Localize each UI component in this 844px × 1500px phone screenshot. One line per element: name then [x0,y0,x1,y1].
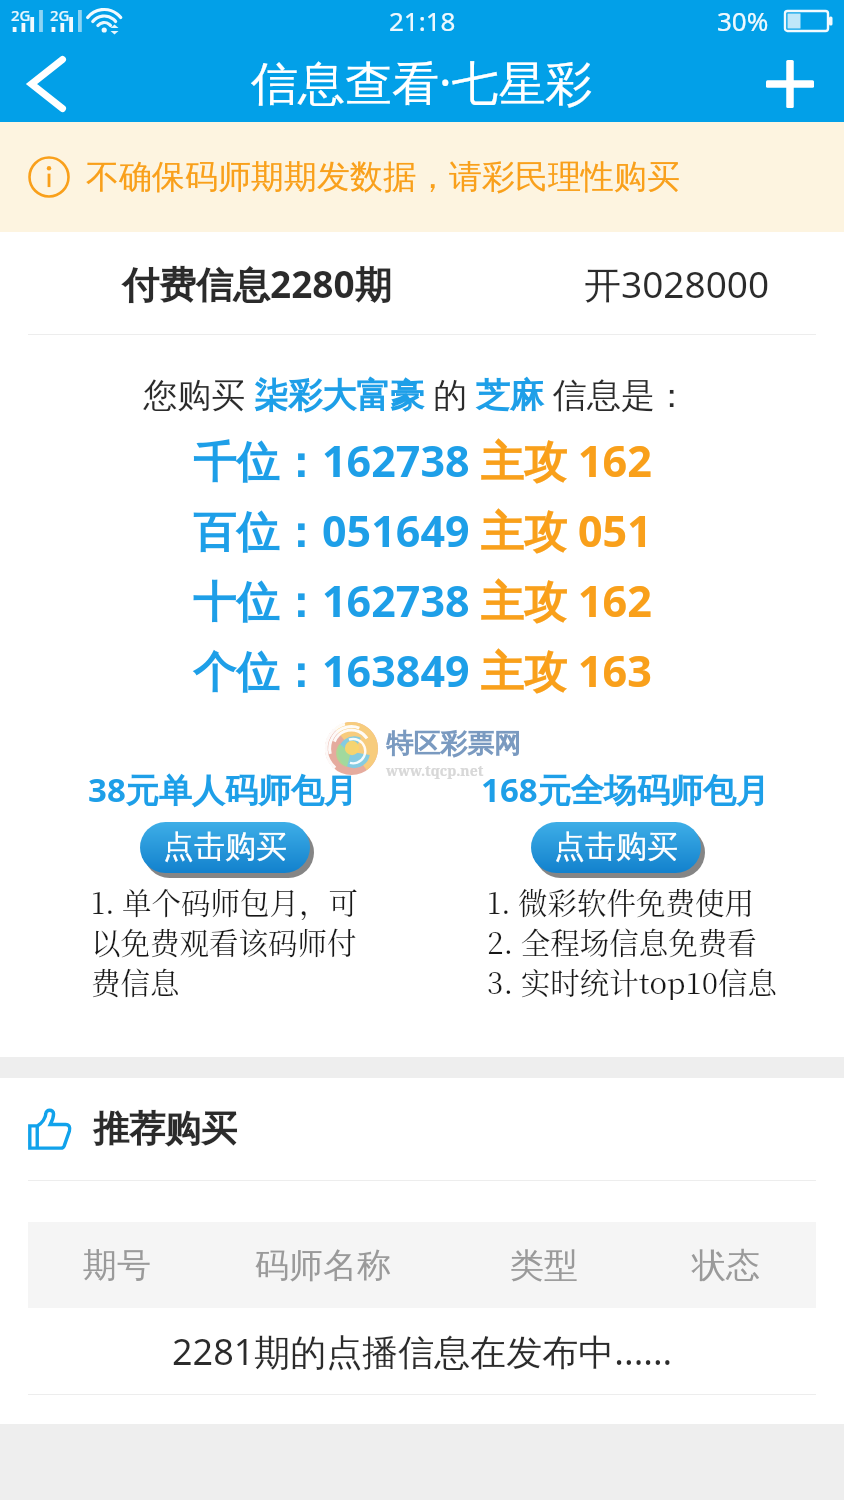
staticText: 点击购买 [554,827,678,866]
staticText: 30% [717,3,769,38]
staticText: 推荐购买 [93,1106,237,1151]
staticText: 千位：162738 主攻 162 [193,431,652,490]
staticText: 不确保码师期期发数据，请彩民理性购买 [86,156,680,198]
staticText: 期号 [83,1244,151,1287]
staticText: 3. 实时统计top10信息 [487,960,778,1000]
staticText: 以免费观看该码师付 [91,920,357,960]
staticText: 点击购买 [163,827,287,866]
button[interactable]: 点击购买 [531,822,701,873]
staticText: 38元单人码师包月 [88,767,357,812]
staticText: 状态 [692,1244,760,1287]
button[interactable]: Back [0,46,94,122]
staticText: 类型 [510,1244,578,1287]
staticText: 开3028000 [584,258,770,309]
button[interactable]: 点击购买 [140,822,310,873]
staticText: 百位：051649 主攻 051 [193,501,652,560]
staticText: 2G [50,5,70,25]
staticText: 信息查看·七星彩 [251,50,593,114]
staticText: 十位：162738 主攻 162 [193,571,652,630]
staticText: 1. 单个码师包月，可 [91,880,359,920]
staticText: 费信息 [91,960,180,1000]
staticText: 您购买 柒彩大富豪 的 芝麻 信息是： [0,371,838,417]
button[interactable]: Add [752,46,828,122]
staticText: 1. 微彩软件免费使用 [487,880,755,920]
staticText: 21:18 [389,3,456,38]
staticText: 付费信息2280期 [122,258,392,309]
staticText: 特区彩票网 [386,727,521,761]
staticText: www.tqcp.net [386,761,484,780]
staticText: 个位：163849 主攻 163 [193,641,652,700]
staticText: 168元全场码师包月 [481,767,769,812]
staticText: 2. 全程场信息免费看 [487,920,757,960]
staticText: 2G [11,5,31,25]
staticText: 码师名称 [255,1244,391,1287]
staticText: 2281期的点播信息在发布中...... [172,1327,673,1376]
